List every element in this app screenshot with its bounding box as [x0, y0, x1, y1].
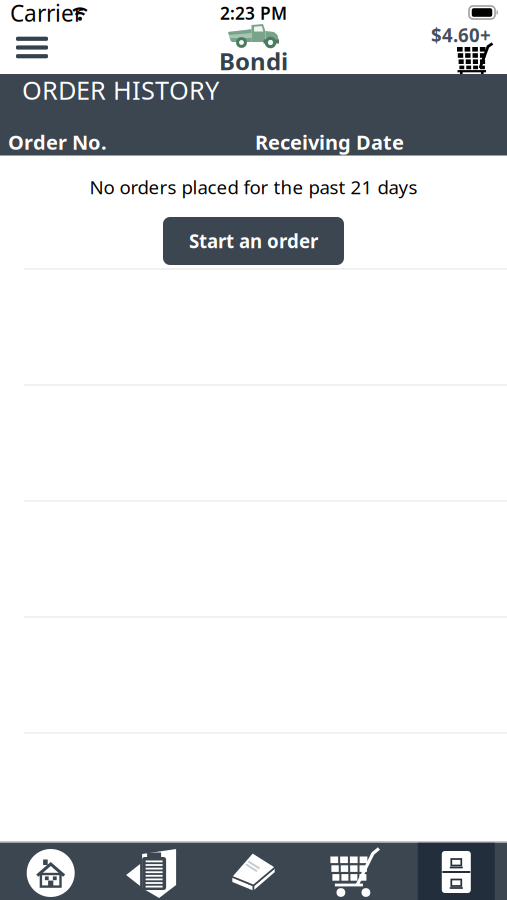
button[interactable]: Order Guide [102, 844, 203, 900]
staticText: Order No. [8, 129, 107, 155]
staticText: 2:23 PM [220, 1, 287, 24]
button[interactable]: Cart [453, 42, 495, 75]
staticText: Start an order [189, 229, 318, 253]
button[interactable]: Home [0, 844, 101, 900]
staticText: $4.60+ [431, 23, 491, 47]
button[interactable]: Order History [406, 843, 507, 900]
staticText: Bondi [219, 45, 288, 77]
button[interactable]: Start an order [163, 217, 344, 265]
staticText: No orders placed for the past 21 days [89, 175, 417, 199]
button[interactable]: Cart [302, 844, 403, 900]
button[interactable]: Menu [10, 29, 54, 65]
staticText: Receiving Date [255, 129, 404, 155]
staticText: ORDER HISTORY [22, 73, 219, 107]
button[interactable]: Catalog [202, 844, 303, 900]
staticText: Carrier [10, 0, 83, 28]
